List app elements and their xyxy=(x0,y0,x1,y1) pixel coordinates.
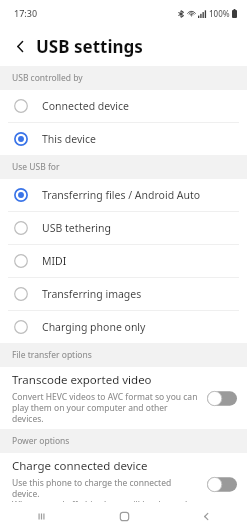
staticText: File transfer options xyxy=(12,349,92,361)
staticText: Transferring files / Android Auto xyxy=(42,188,201,202)
staticText: Power options xyxy=(12,435,70,447)
button[interactable]: Back xyxy=(6,32,34,60)
staticText: USB settings xyxy=(36,35,143,58)
button[interactable]: Transferring files / Android Auto xyxy=(0,179,247,211)
staticText: Connected device xyxy=(42,99,130,113)
staticText: MIDI xyxy=(42,254,67,268)
staticText: USB controlled by xyxy=(12,72,83,84)
button[interactable]: Transcode exported video xyxy=(0,367,247,429)
button[interactable]: Charge connected device xyxy=(0,453,247,515)
staticText: Convert HEVC videos to AVC format so you… xyxy=(12,391,199,424)
staticText: Use USB for xyxy=(12,161,60,173)
staticText: Transferring images xyxy=(42,287,142,301)
staticText: Charge connected device xyxy=(12,458,148,474)
staticText: Use this phone to charge the connected d… xyxy=(12,477,199,510)
staticText: 100% xyxy=(209,8,230,19)
button[interactable]: Back xyxy=(165,502,247,530)
button[interactable]: MIDI xyxy=(0,245,247,277)
button[interactable]: Charging phone only xyxy=(0,311,247,343)
button[interactable]: Toggle Charge connected device xyxy=(207,476,237,493)
button[interactable]: Recent apps xyxy=(0,502,83,530)
button[interactable]: USB tethering xyxy=(0,212,247,244)
button[interactable]: Home xyxy=(83,502,165,530)
button[interactable]: Toggle Transcode exported video xyxy=(207,390,237,407)
staticText: Charging phone only xyxy=(42,320,146,334)
button[interactable]: Connected device xyxy=(0,90,247,122)
staticText: This device xyxy=(42,132,96,146)
staticText: USB tethering xyxy=(42,221,111,235)
button[interactable]: Transferring images xyxy=(0,278,247,310)
button[interactable]: This device xyxy=(0,123,247,155)
staticText: Transcode exported video xyxy=(12,372,152,388)
staticText: 17:30 xyxy=(14,7,38,19)
